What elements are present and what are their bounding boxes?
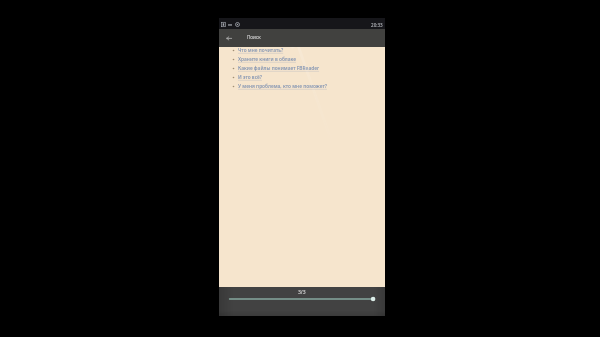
button[interactable]: Что мне почитать? [232, 47, 284, 54]
button[interactable]: У меня проблема, кто мне поможет? [232, 83, 327, 90]
staticText: Поиск [247, 34, 261, 40]
button[interactable]: И это всё? [232, 74, 263, 81]
staticText: Какие файлы понимает FBReader [238, 65, 320, 72]
staticText: И это всё? [238, 74, 263, 81]
staticText: Что мне почитать? [238, 47, 284, 54]
staticText: У меня проблема, кто мне поможет? [238, 83, 327, 90]
staticText: 20:33 [371, 22, 383, 28]
staticText: 3/3 [298, 289, 306, 296]
button[interactable]: Back [222, 32, 235, 45]
button[interactable]: Храните книги в облаке [232, 56, 297, 63]
staticText: Храните книги в облаке [238, 56, 297, 63]
button[interactable]: Page seek bar [219, 294, 385, 303]
button[interactable]: Какие файлы понимает FBReader [232, 65, 320, 72]
